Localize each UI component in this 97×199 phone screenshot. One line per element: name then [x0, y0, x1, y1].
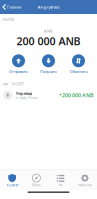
- button[interactable]: Перевод: [0, 86, 97, 103]
- staticText: Перевод: [15, 90, 32, 96]
- staticText: Обзор: [32, 183, 41, 187]
- button[interactable]: Получить: [36, 54, 60, 74]
- button[interactable]: Обменять: [66, 54, 90, 74]
- staticText: ANB: [44, 28, 53, 34]
- button[interactable]: Отправить: [6, 54, 30, 74]
- button[interactable]: Кошелёк: [0, 173, 24, 188]
- staticText: авг. 14 2021: [3, 81, 24, 86]
- staticText: AngryBoss: [37, 4, 59, 10]
- staticText: от Kyrylo Petrov: [15, 96, 37, 100]
- button[interactable]: Главная: [0, 2, 24, 12]
- button[interactable]: Настройки: [73, 173, 97, 188]
- staticText: Получить: [40, 69, 57, 74]
- staticText: +200 000 ANB: [59, 92, 94, 99]
- staticText: BEP20: [3, 16, 14, 22]
- staticText: Кошелёк: [7, 183, 18, 187]
- staticText: NFT: [59, 183, 63, 187]
- button[interactable]: NFT: [48, 173, 73, 188]
- staticText: Отправить: [9, 69, 28, 74]
- staticText: Обменять: [69, 69, 87, 74]
- staticText: 200 000 ANB: [16, 34, 80, 48]
- button[interactable]: Обзор: [24, 173, 48, 188]
- staticText: Главная: [7, 4, 21, 10]
- staticText: Настройки: [78, 183, 92, 187]
